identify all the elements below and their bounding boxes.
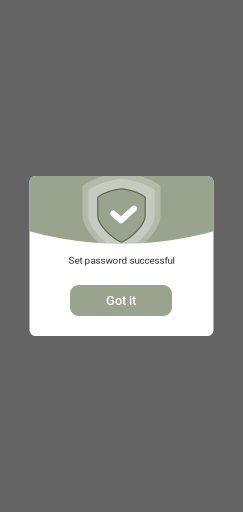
staticText: Got it	[106, 293, 136, 308]
staticText: Set password successful	[68, 255, 174, 266]
button[interactable]: Got it	[70, 285, 172, 316]
